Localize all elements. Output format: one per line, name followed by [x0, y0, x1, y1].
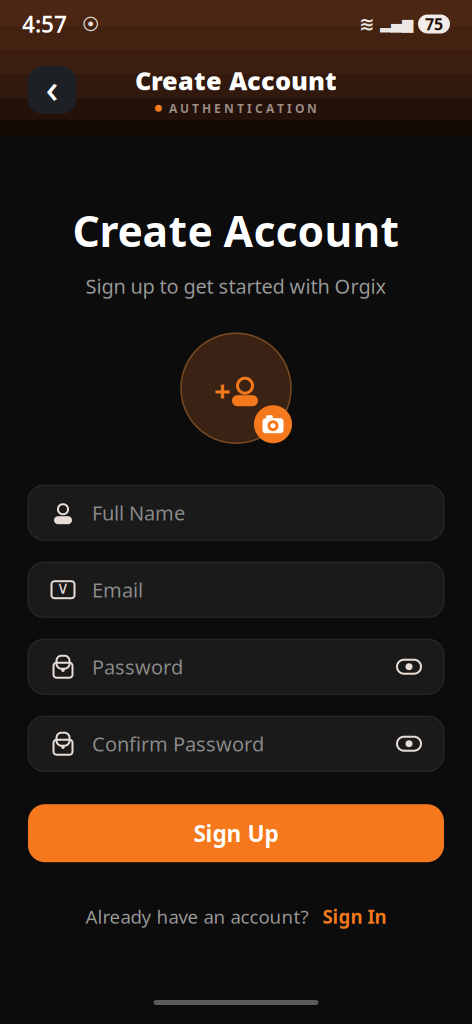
button[interactable]: Back [28, 61, 76, 119]
staticText: ≋ [359, 13, 375, 35]
button[interactable]: Add profile photo [180, 333, 292, 443]
button[interactable]: ∨ [28, 562, 444, 617]
staticText: Sign Up [193, 818, 278, 848]
staticText: A U T H E N T I C A T I O N [169, 100, 317, 116]
staticText: Password [92, 653, 183, 680]
staticText: + [214, 371, 231, 410]
staticText: 4:57 [22, 9, 67, 39]
button[interactable]: Full Name [28, 485, 444, 540]
staticText: Full Name [92, 499, 185, 526]
staticText: Create Account [135, 64, 337, 97]
staticText: ▂▄▆ [380, 16, 413, 32]
staticText: ⦿ [73, 15, 99, 32]
staticText: 75 [425, 13, 443, 35]
button[interactable]: Password [28, 639, 444, 694]
staticText: Confirm Password [92, 730, 264, 757]
button[interactable]: Confirm Password [28, 716, 444, 771]
button[interactable]: Sign In [308, 904, 386, 929]
staticText: Email [92, 576, 143, 603]
staticText: Already have an account? [85, 904, 308, 929]
button[interactable]: Sign Up [28, 804, 444, 862]
staticText: Sign up to get started with Orgix [85, 273, 386, 299]
staticText: Create Account [72, 202, 399, 259]
staticText: ‹ [45, 61, 58, 114]
staticText: ∨ [56, 578, 69, 598]
staticText: Sign In [322, 904, 386, 929]
